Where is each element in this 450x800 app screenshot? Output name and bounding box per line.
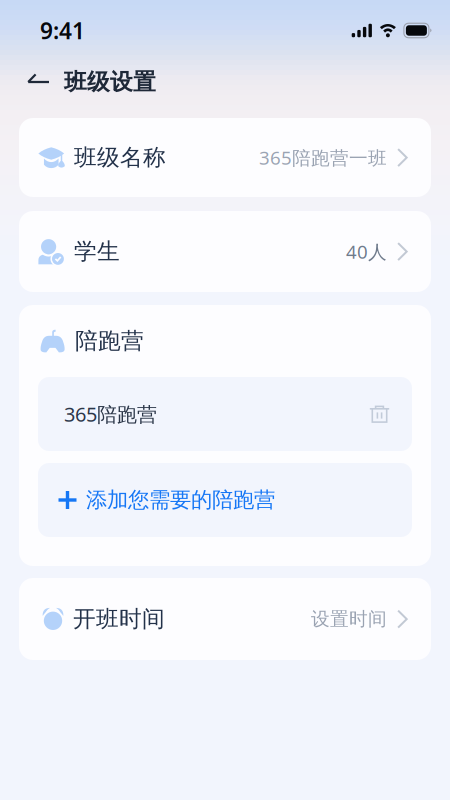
staticText: 40人 [346,239,387,264]
staticText: 班级名称 [74,144,166,171]
staticText: 添加您需要的陪跑营 [86,487,275,513]
button[interactable]: 班级名称 [19,118,431,197]
staticText: 学生 [74,238,120,265]
staticText: 开班时间 [73,605,165,633]
button[interactable]: 添加您需要的陪跑营 [38,463,412,537]
staticText: 班级设置 [64,68,156,96]
staticText: 陪跑营 [75,327,144,355]
staticText: 365陪跑营 [64,401,157,427]
staticText: 设置时间 [311,607,387,630]
staticText: 365陪跑营一班 [259,145,387,170]
button[interactable]: Back [23,64,54,100]
button[interactable]: 365陪跑营 [38,377,412,451]
button[interactable]: 开班时间 [19,578,431,660]
button[interactable]: 学生 [19,211,431,292]
staticText: 9:41 [40,15,85,45]
